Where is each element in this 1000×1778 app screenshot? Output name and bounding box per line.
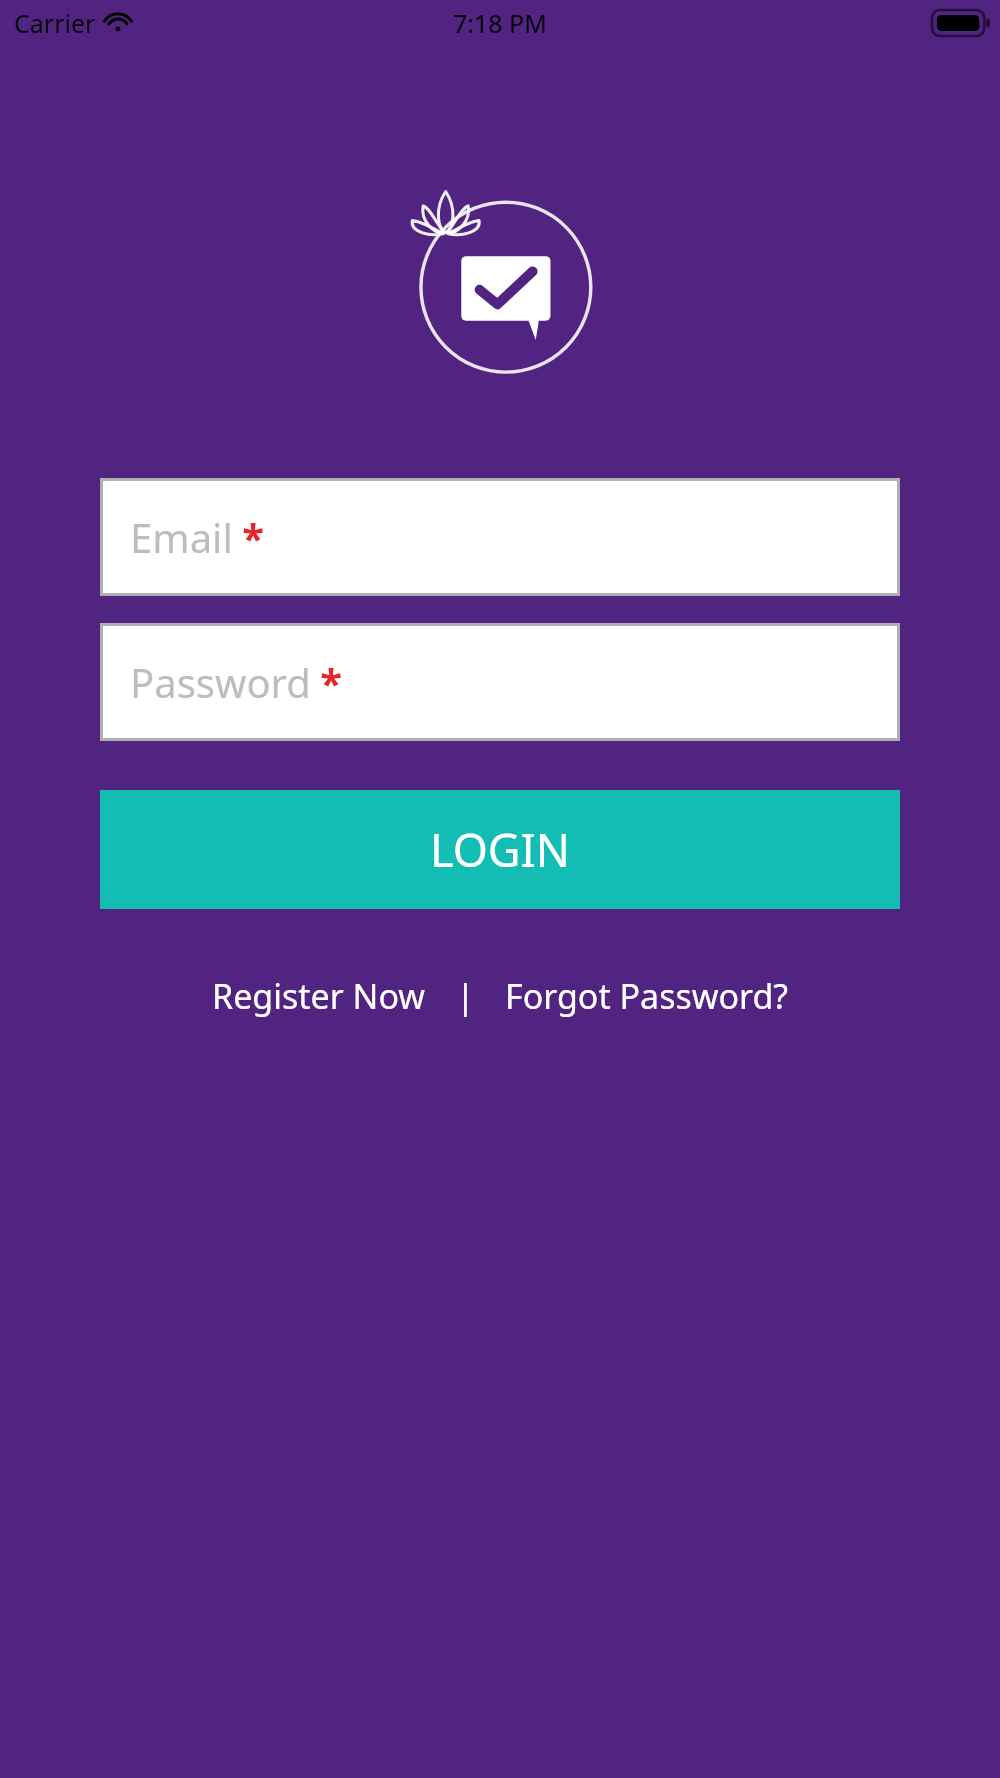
button[interactable]: Email	[100, 478, 900, 596]
staticText: Forgot Password?	[505, 973, 789, 1019]
button[interactable]: LOGIN	[100, 790, 900, 909]
staticText: Carrier	[14, 6, 96, 40]
button[interactable]: Register Now	[206, 967, 432, 1025]
staticText: 7:18 PM	[453, 6, 547, 40]
other: App logo	[393, 170, 608, 385]
staticText: LOGIN	[430, 819, 571, 880]
staticText: *	[320, 655, 342, 709]
button[interactable]: Password	[100, 623, 900, 741]
staticText: Password	[130, 655, 311, 709]
staticText: Email	[130, 510, 233, 564]
staticText: |	[456, 973, 475, 1019]
staticText: *	[242, 510, 264, 564]
staticText: Register Now	[212, 973, 426, 1019]
button[interactable]: Forgot Password?	[499, 967, 795, 1025]
